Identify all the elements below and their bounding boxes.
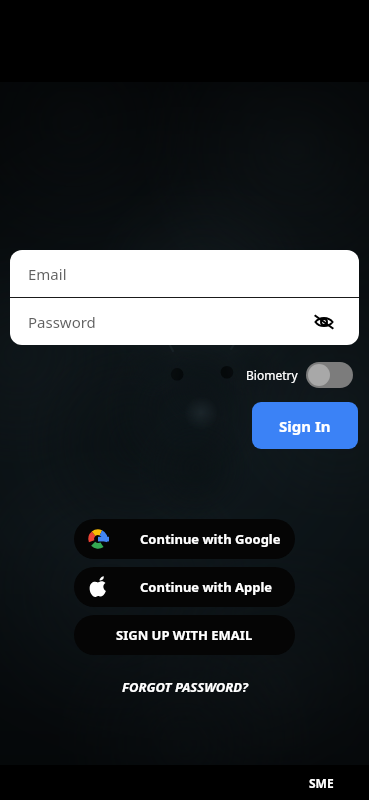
button[interactable]: Password (10, 298, 359, 345)
button[interactable]: Email (10, 250, 359, 297)
button[interactable]: Sign In (252, 402, 358, 449)
staticText: Continue with Google (140, 530, 281, 548)
button[interactable]: Continue with Google (74, 519, 295, 559)
button[interactable]: Biometry (246, 362, 353, 388)
staticText: Email (28, 264, 67, 284)
button[interactable]: SME (303, 771, 340, 795)
button[interactable]: Toggle password visibility (309, 307, 339, 337)
button[interactable]: SIGN UP WITH EMAIL (74, 615, 295, 655)
staticText: Continue with Apple (140, 578, 273, 596)
staticText: SME (309, 775, 334, 791)
staticText: FORGOT PASSWORD? (122, 678, 248, 696)
staticText: Biometry (246, 367, 298, 383)
button[interactable]: FORGOT PASSWORD? (0, 674, 369, 700)
staticText: Sign In (279, 416, 331, 436)
button[interactable]: Continue with Apple (74, 567, 295, 607)
staticText: Password (28, 312, 96, 332)
staticText: SIGN UP WITH EMAIL (116, 626, 253, 644)
